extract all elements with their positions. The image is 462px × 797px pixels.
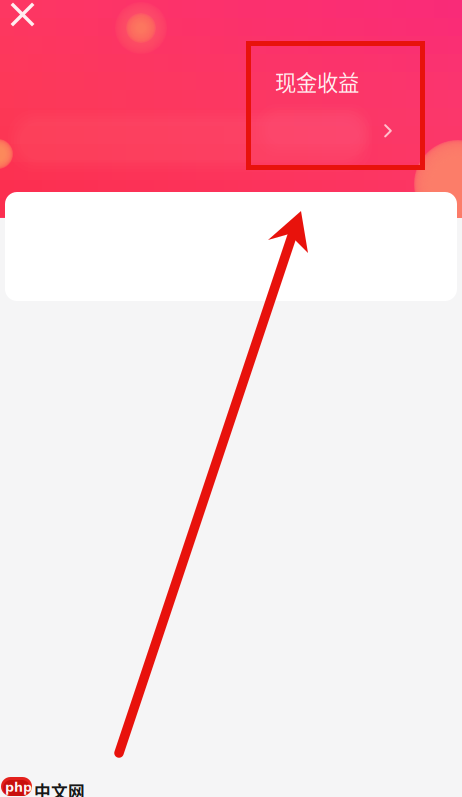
staticText: 现金收益 [275,66,359,97]
staticText: 中文网 [34,779,85,797]
button[interactable]: 现金收益 [246,41,425,170]
button[interactable]: Close [0,0,44,42]
staticText: php [5,780,32,795]
